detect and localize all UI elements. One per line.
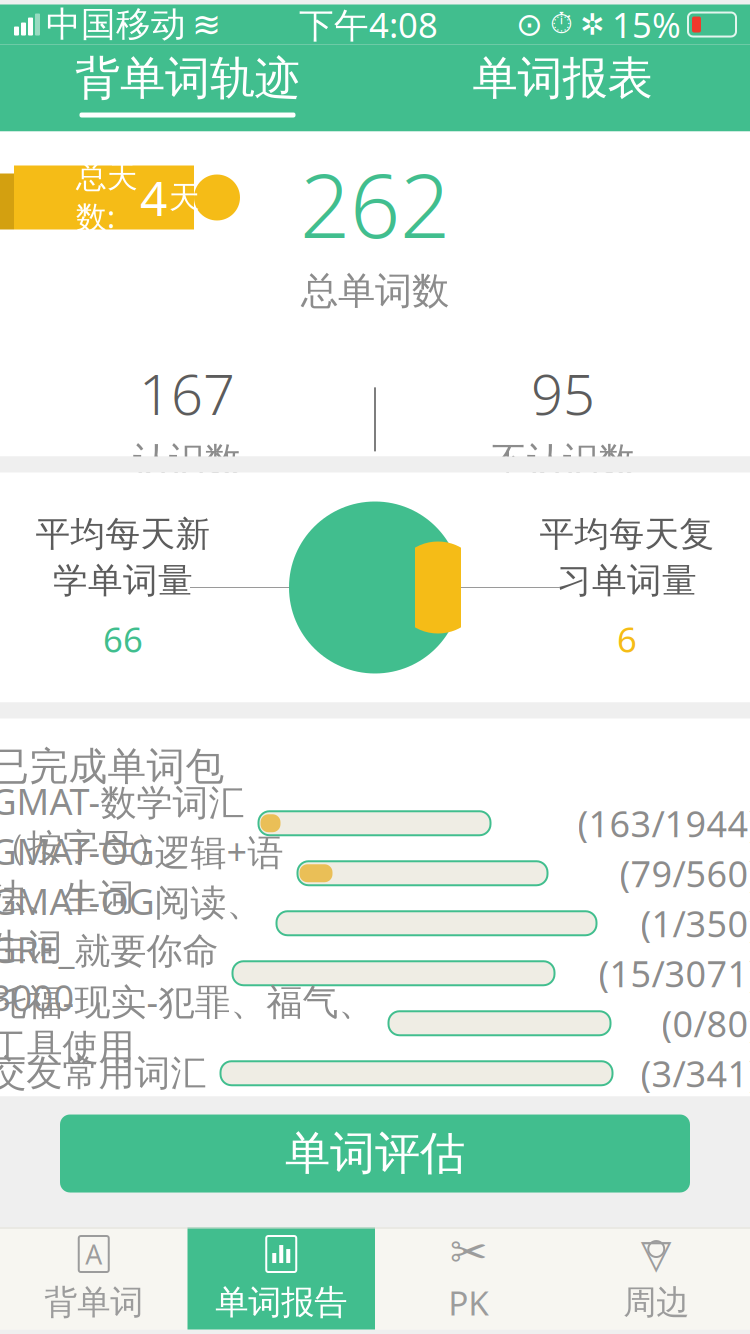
- staticText: 单词报告: [215, 1282, 347, 1323]
- staticText: 4: [140, 166, 167, 229]
- staticText: ≋: [192, 5, 221, 44]
- staticText: 15%: [612, 1, 681, 47]
- staticText: GRE_就要你命3000: [0, 925, 218, 1021]
- staticText: GMAT-OG逻辑+语法、生词: [0, 827, 283, 919]
- staticText: 习单词量: [557, 559, 697, 602]
- staticText: ⊙: [516, 6, 543, 43]
- staticText: 托福-现实-犯罪、福气、工具使用: [0, 977, 374, 1069]
- button[interactable]: 单词报表: [375, 44, 750, 131]
- button[interactable]: 单词评估: [60, 1114, 690, 1192]
- button[interactable]: 单词报告: [187, 1227, 375, 1329]
- staticText: 学单词量: [53, 559, 193, 602]
- staticText: 天: [169, 179, 200, 216]
- staticText: ⏱: [550, 10, 573, 39]
- staticText: 167: [139, 356, 235, 430]
- staticText: 背单词轨迹: [75, 51, 300, 106]
- staticText: 95: [531, 356, 595, 430]
- staticText: ▽: [641, 1231, 672, 1277]
- staticText: 平均每天新: [35, 513, 210, 555]
- staticText: 平均每天复: [539, 513, 714, 555]
- staticText: (3/341): [640, 1049, 750, 1097]
- staticText: 周边: [623, 1282, 689, 1323]
- staticText: 总天数:: [76, 158, 138, 237]
- staticText: GMAT-数学词汇（按字母）: [0, 777, 244, 869]
- staticText: GMAT-OG阅读、生词: [0, 877, 262, 969]
- staticText: 262: [300, 145, 450, 262]
- staticText: 单词评估: [285, 1126, 465, 1181]
- staticText: PK: [448, 1280, 489, 1325]
- staticText: 不认识数: [491, 438, 635, 483]
- button[interactable]: 背单词轨迹: [0, 44, 375, 131]
- staticText: 6: [617, 616, 637, 662]
- staticText: 交友常用词汇: [0, 1051, 206, 1095]
- staticText: (0/80): [661, 999, 750, 1047]
- button[interactable]: ▽: [562, 1227, 750, 1329]
- staticText: ✲: [580, 8, 605, 41]
- staticText: ✂: [450, 1227, 488, 1278]
- staticText: 66: [103, 616, 143, 662]
- staticText: 下午4:08: [299, 1, 438, 47]
- staticText: 认识数: [133, 438, 241, 483]
- staticText: 背单词: [44, 1282, 143, 1323]
- staticText: (1/350): [640, 899, 750, 947]
- staticText: 已完成单词包: [0, 743, 224, 790]
- staticText: 中国移动: [46, 3, 186, 46]
- staticText: (79/560): [619, 849, 750, 897]
- staticText: A: [85, 1236, 102, 1272]
- staticText: 单词报表: [472, 51, 652, 106]
- staticText: (163/1944): [577, 799, 750, 847]
- button[interactable]: A: [0, 1227, 187, 1329]
- button[interactable]: ✂: [375, 1227, 562, 1329]
- staticText: (15/3071): [598, 949, 750, 997]
- staticText: 总单词数: [301, 268, 449, 314]
